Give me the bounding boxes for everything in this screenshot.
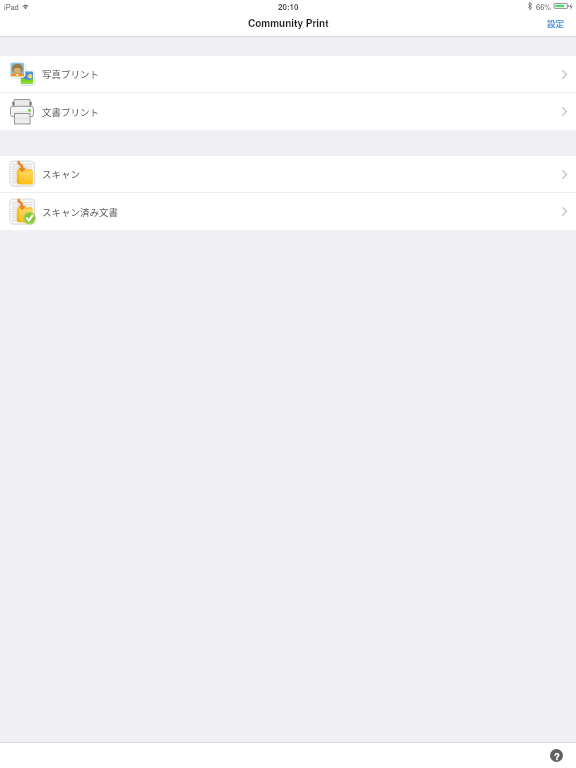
button[interactable]: Help: [550, 749, 563, 762]
button[interactable]: 写真プリント: [0, 56, 576, 92]
staticText: スキャン済み文書: [42, 205, 119, 219]
staticText: 20:10: [278, 1, 299, 12]
staticText: スキャン: [42, 167, 81, 181]
button[interactable]: スキャン済み文書: [0, 193, 576, 230]
staticText: 66%: [536, 1, 552, 12]
button[interactable]: 文書プリント: [0, 93, 576, 130]
staticText: 写真プリント: [42, 67, 100, 81]
staticText: iPad: [4, 1, 19, 12]
staticText: 設定: [547, 17, 565, 29]
staticText: 文書プリント: [42, 105, 100, 119]
button[interactable]: スキャン: [0, 156, 576, 192]
staticText: Community Print: [248, 16, 329, 30]
button[interactable]: 設定: [536, 14, 576, 34]
staticText: ?: [554, 749, 560, 762]
